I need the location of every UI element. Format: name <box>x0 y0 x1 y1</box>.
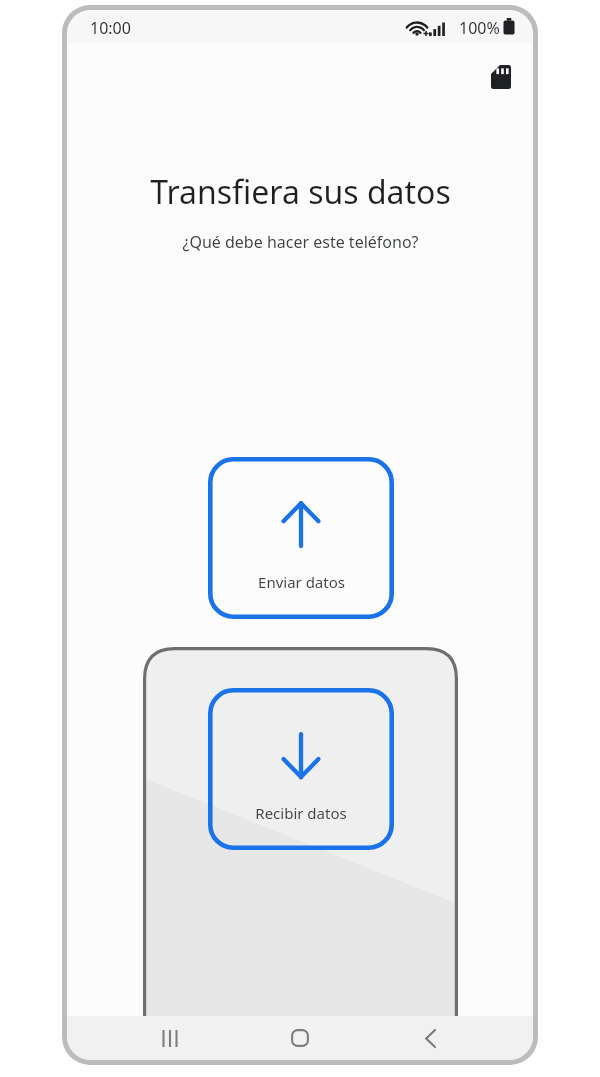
button[interactable]: Recents <box>140 1016 200 1060</box>
button[interactable]: Recibir datos <box>208 688 394 850</box>
staticText: 10:00 <box>90 17 131 39</box>
button[interactable]: Home <box>270 1016 330 1060</box>
button[interactable]: Back <box>400 1016 460 1060</box>
staticText: 100% <box>459 17 500 39</box>
staticText: Transfiera sus datos <box>150 170 451 214</box>
staticText: ¿Qué debe hacer este teléfono? <box>182 231 419 253</box>
button[interactable]: SD card <box>477 53 525 101</box>
staticText: Enviar datos <box>258 572 345 592</box>
staticText: Recibir datos <box>255 803 347 823</box>
button[interactable]: Enviar datos <box>208 457 394 619</box>
